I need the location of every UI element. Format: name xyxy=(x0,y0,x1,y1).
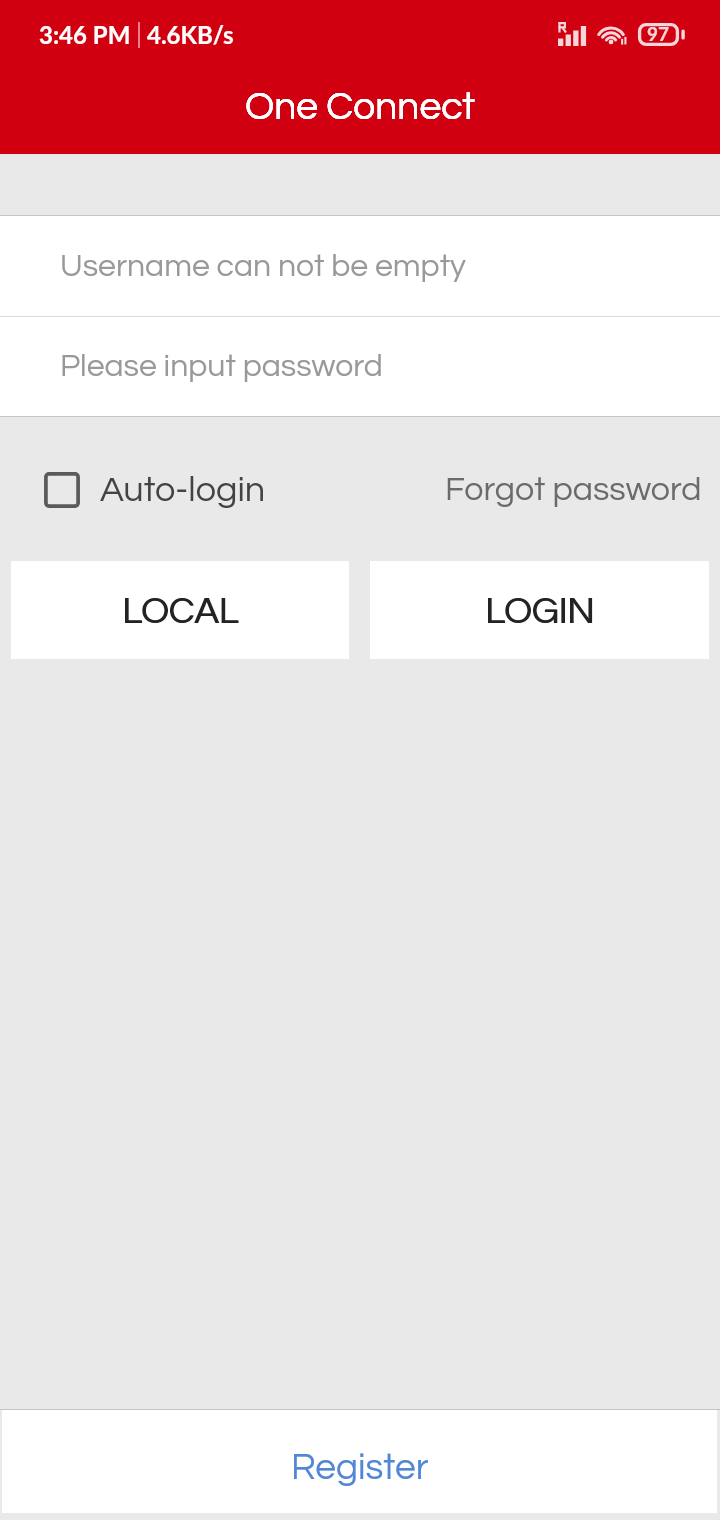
staticText: Forgot password xyxy=(445,472,702,507)
staticText: Username can not be empty xyxy=(60,250,466,283)
staticText: One Connect xyxy=(245,87,476,127)
staticText: Auto-login xyxy=(100,471,266,508)
staticText: One Connect xyxy=(245,87,476,127)
staticText: 97 xyxy=(647,22,670,45)
button[interactable]: Register xyxy=(2,1410,717,1513)
staticText: LOCAL xyxy=(122,593,239,631)
staticText: LOGIN xyxy=(486,593,596,631)
staticText: 4.6KB/s xyxy=(147,20,234,49)
button[interactable]: LOCAL xyxy=(11,561,349,659)
staticText: 3:46 PM xyxy=(39,20,131,49)
button[interactable]: Please input password xyxy=(0,317,720,416)
staticText: LOCAL xyxy=(123,593,240,631)
other: Battery 97 percent xyxy=(638,23,686,46)
staticText: LOGIN xyxy=(485,593,595,631)
button[interactable]: Forgot password xyxy=(429,462,720,517)
button[interactable]: LOGIN xyxy=(370,561,709,659)
staticText: Please input password xyxy=(60,350,383,383)
other: Wi-Fi connected xyxy=(596,22,629,46)
button[interactable]: Username can not be empty xyxy=(0,216,720,316)
button[interactable]: Auto-login xyxy=(0,461,278,518)
other: Mobile signal, roaming xyxy=(558,22,587,46)
staticText: Register xyxy=(291,1449,429,1487)
